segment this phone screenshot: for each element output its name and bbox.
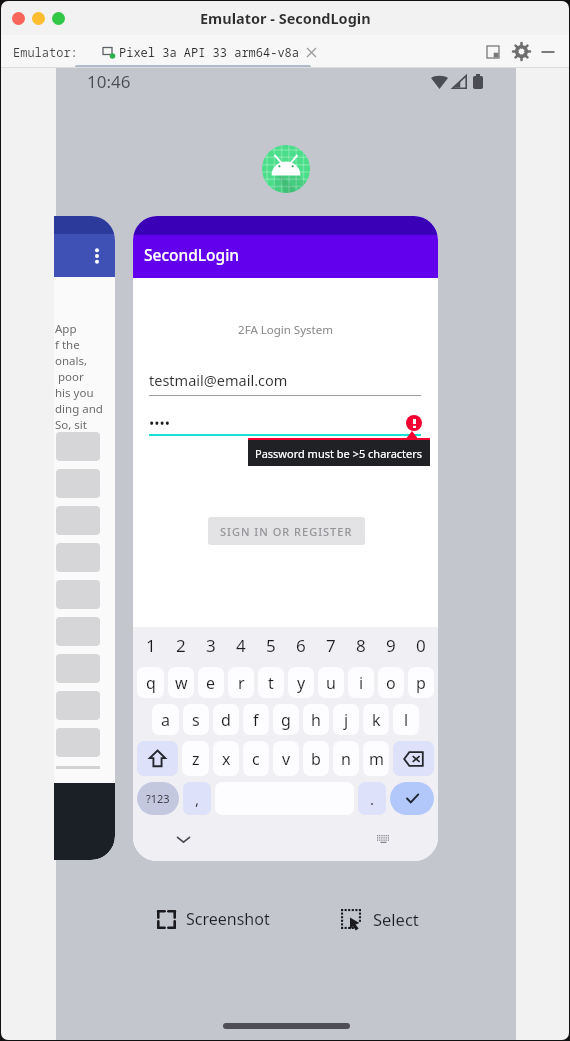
staticText: 7	[326, 634, 336, 657]
button[interactable]: 9	[376, 627, 406, 664]
button[interactable]: y	[288, 667, 314, 698]
staticText: a	[161, 709, 170, 731]
button[interactable]: 0	[406, 627, 436, 664]
staticText: 10:46	[87, 70, 131, 93]
button[interactable]: 4	[226, 627, 256, 664]
button[interactable]: d	[213, 704, 239, 735]
staticText: 1	[146, 634, 156, 657]
button[interactable]: 7	[316, 627, 346, 664]
button[interactable]: 2	[166, 627, 196, 664]
button[interactable]: w	[168, 667, 194, 698]
button[interactable]: o	[378, 667, 404, 698]
button[interactable]: x	[213, 741, 239, 776]
other: Close tab	[307, 48, 316, 57]
staticText: 6	[296, 634, 306, 657]
staticText: ding and	[55, 401, 103, 417]
staticText: k	[372, 709, 381, 731]
button[interactable]: Enter	[390, 782, 434, 815]
button[interactable]: 5	[256, 627, 286, 664]
staticText: h	[311, 709, 321, 731]
staticText: his you	[55, 385, 94, 401]
staticText: 8	[356, 634, 366, 657]
staticText: testmail@email.com	[149, 370, 288, 390]
button[interactable]: Shift	[137, 741, 178, 776]
staticText: Emulator - SecondLogin	[200, 8, 371, 28]
staticText: ••••	[149, 414, 171, 433]
staticText: 4	[236, 634, 246, 657]
staticText: SecondLogin	[144, 244, 240, 265]
button[interactable]: p	[408, 667, 434, 698]
staticText: w	[175, 672, 188, 694]
button[interactable]: l	[393, 704, 419, 735]
button[interactable]: u	[318, 667, 344, 698]
button[interactable]: 3	[196, 627, 226, 664]
button[interactable]: Maximize window	[52, 12, 65, 25]
button[interactable]: App	[54, 216, 115, 860]
button[interactable]: 1	[135, 627, 166, 664]
button[interactable]: a	[152, 704, 179, 735]
button[interactable]: h	[303, 704, 329, 735]
button[interactable]: SIGN IN OR REGISTER	[208, 517, 365, 545]
staticText: Password must be >5 characters	[255, 446, 423, 461]
button[interactable]: Snapshot	[486, 45, 500, 59]
button[interactable]: 8	[346, 627, 376, 664]
button[interactable]: v	[273, 741, 299, 776]
button[interactable]: r	[228, 667, 254, 698]
button[interactable]: e	[198, 667, 224, 698]
staticText: y	[297, 672, 306, 694]
staticText: f	[253, 709, 259, 731]
button[interactable]: Select	[341, 908, 419, 930]
staticText: Pixel 3a API 33 arm64-v8a	[119, 44, 300, 60]
button[interactable]: f	[243, 704, 269, 735]
button[interactable]: k	[363, 704, 389, 735]
staticText: onals,	[55, 353, 88, 369]
button[interactable]: i	[348, 667, 374, 698]
staticText: l	[404, 709, 409, 731]
staticText: c	[252, 748, 260, 770]
button[interactable]: n	[333, 741, 359, 776]
button[interactable]: Minimize panel	[541, 45, 555, 59]
staticText: i	[359, 672, 364, 694]
staticText: p	[416, 672, 426, 694]
button[interactable]: z	[182, 741, 209, 776]
staticText: 2	[176, 634, 186, 657]
button[interactable]: Screenshot	[157, 908, 270, 930]
button[interactable]: 6	[286, 627, 316, 664]
staticText: j	[344, 709, 349, 731]
staticText: t	[268, 672, 274, 694]
staticText: v	[282, 748, 291, 770]
staticText: .	[370, 789, 375, 809]
staticText: o	[386, 672, 396, 694]
staticText: d	[221, 709, 231, 731]
button[interactable]: Pixel 3a API 33 arm64-v8a	[102, 44, 316, 60]
button[interactable]: t	[258, 667, 284, 698]
staticText: ,	[195, 789, 200, 809]
button[interactable]: Minimize window	[32, 12, 45, 25]
button[interactable]: Settings	[514, 44, 529, 59]
button[interactable]: ?123	[137, 782, 179, 815]
button[interactable]: q	[137, 667, 164, 698]
button[interactable]: .	[358, 782, 386, 815]
staticText: f the	[55, 337, 80, 353]
button[interactable]: g	[273, 704, 299, 735]
staticText: q	[146, 672, 156, 694]
button[interactable]: Backspace	[393, 741, 434, 776]
staticText: SIGN IN OR REGISTER	[220, 524, 353, 539]
other: Select	[341, 909, 361, 929]
button[interactable]: Close window	[12, 12, 25, 25]
staticText: poor	[55, 369, 84, 385]
button[interactable]: ,	[183, 782, 211, 815]
staticText: s	[192, 709, 200, 731]
staticText: n	[341, 748, 351, 770]
button[interactable]: j	[333, 704, 359, 735]
staticText: u	[326, 672, 336, 694]
button[interactable]: Hide keyboard	[176, 832, 191, 847]
button[interactable]: b	[303, 741, 329, 776]
button[interactable]: m	[363, 741, 389, 776]
button[interactable]: Switch keyboard	[377, 835, 390, 844]
button[interactable]: c	[243, 741, 269, 776]
button[interactable]: s	[183, 704, 209, 735]
staticText: z	[192, 748, 200, 770]
staticText: x	[222, 748, 231, 770]
